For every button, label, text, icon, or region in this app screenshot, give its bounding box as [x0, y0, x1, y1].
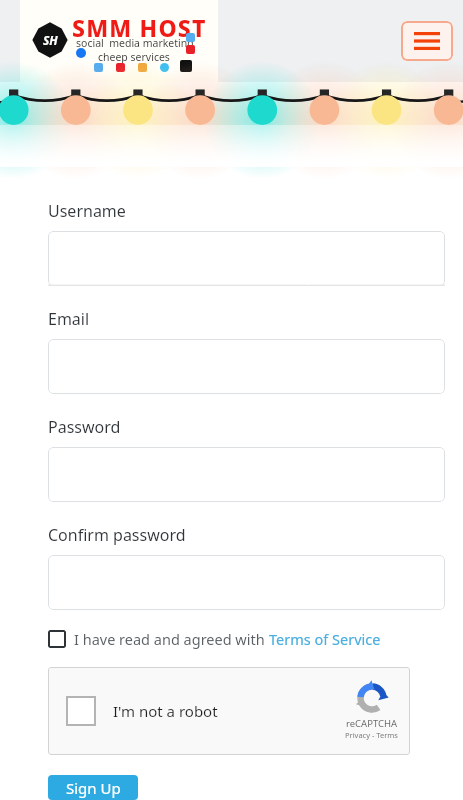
button[interactable] [48, 447, 445, 502]
button[interactable]: Open menu [401, 21, 453, 61]
staticText: Password [48, 416, 121, 438]
button[interactable] [48, 231, 445, 286]
staticText: SH [43, 32, 58, 48]
staticText: Username [48, 200, 126, 222]
staticText: Privacy - Terms [345, 730, 398, 740]
button[interactable]: SMM HOST logo [20, 0, 218, 82]
button[interactable]: Terms of Service [269, 629, 381, 649]
staticText: SMM HOST [72, 12, 207, 43]
staticText: cheep services [98, 50, 170, 64]
button[interactable]: I'm not a robot [48, 667, 410, 755]
staticText: Sign Up [66, 778, 121, 798]
staticText: social media marketing [76, 36, 194, 50]
staticText: I'm not a robot [113, 701, 218, 721]
button[interactable] [48, 339, 445, 394]
staticText: reCAPTCHA [346, 717, 398, 730]
staticText: Email [48, 308, 90, 330]
staticText: Confirm password [48, 524, 186, 546]
staticText: I have read and agreed with [74, 629, 269, 649]
button[interactable]: Sign Up [48, 775, 138, 800]
button[interactable] [48, 555, 445, 610]
button[interactable]: I have read and agreed with [48, 629, 381, 649]
